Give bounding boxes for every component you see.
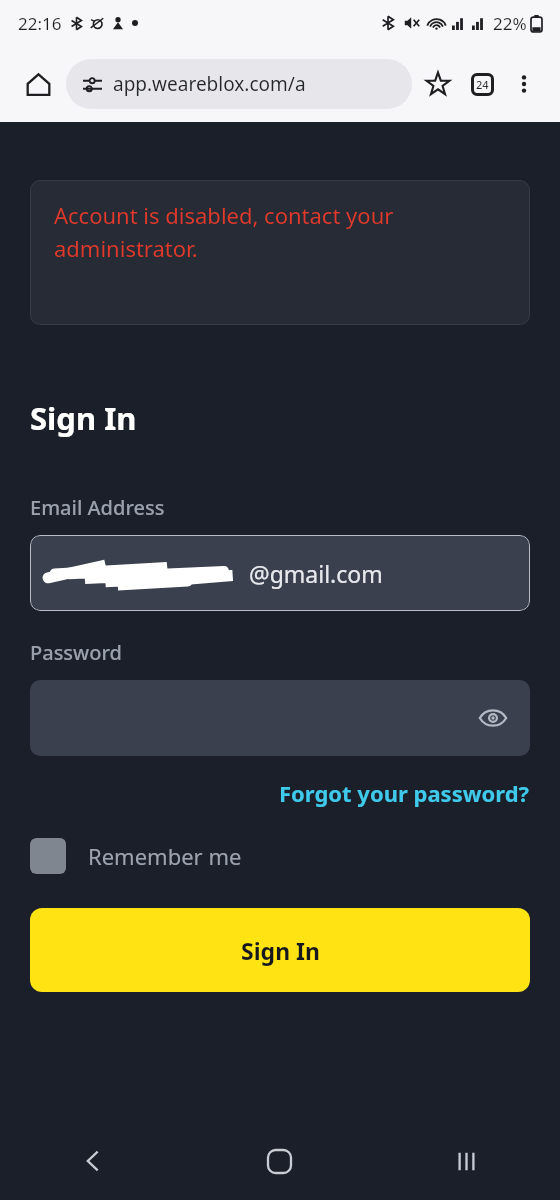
button[interactable]: Home <box>186 1122 373 1200</box>
staticText: 22% <box>493 12 527 35</box>
staticText: 24 <box>476 77 489 92</box>
button[interactable]: app.weareblox.com/a <box>66 59 412 109</box>
button[interactable]: Back <box>0 1122 186 1200</box>
staticText: Password <box>30 639 122 666</box>
button[interactable]: Sign In <box>30 908 530 992</box>
button[interactable]: Show password <box>30 680 530 756</box>
button[interactable]: More options <box>504 64 544 104</box>
staticText: Email Address <box>30 494 165 521</box>
staticText: @gmail.com <box>249 558 383 589</box>
button[interactable]: Bookmark <box>416 62 460 106</box>
button[interactable]: Recent apps <box>373 1122 560 1200</box>
staticText: Forgot your password? <box>279 778 530 808</box>
staticText: 22:16 <box>18 12 62 35</box>
button[interactable]: @gmail.com <box>30 535 530 611</box>
button[interactable]: Remember me <box>30 838 242 874</box>
staticText: Account is disabled, contact your admini… <box>54 200 506 263</box>
button[interactable]: Forgot your password? <box>279 778 530 808</box>
staticText: Remember me <box>88 841 242 871</box>
staticText: app.weareblox.com/a <box>113 71 306 97</box>
staticText: Sign In <box>241 935 320 966</box>
button[interactable]: Home <box>16 62 60 106</box>
button[interactable]: Show password <box>470 695 516 741</box>
button[interactable]: Tabs, 24 open <box>460 62 504 106</box>
staticText: Sign In <box>30 397 137 439</box>
